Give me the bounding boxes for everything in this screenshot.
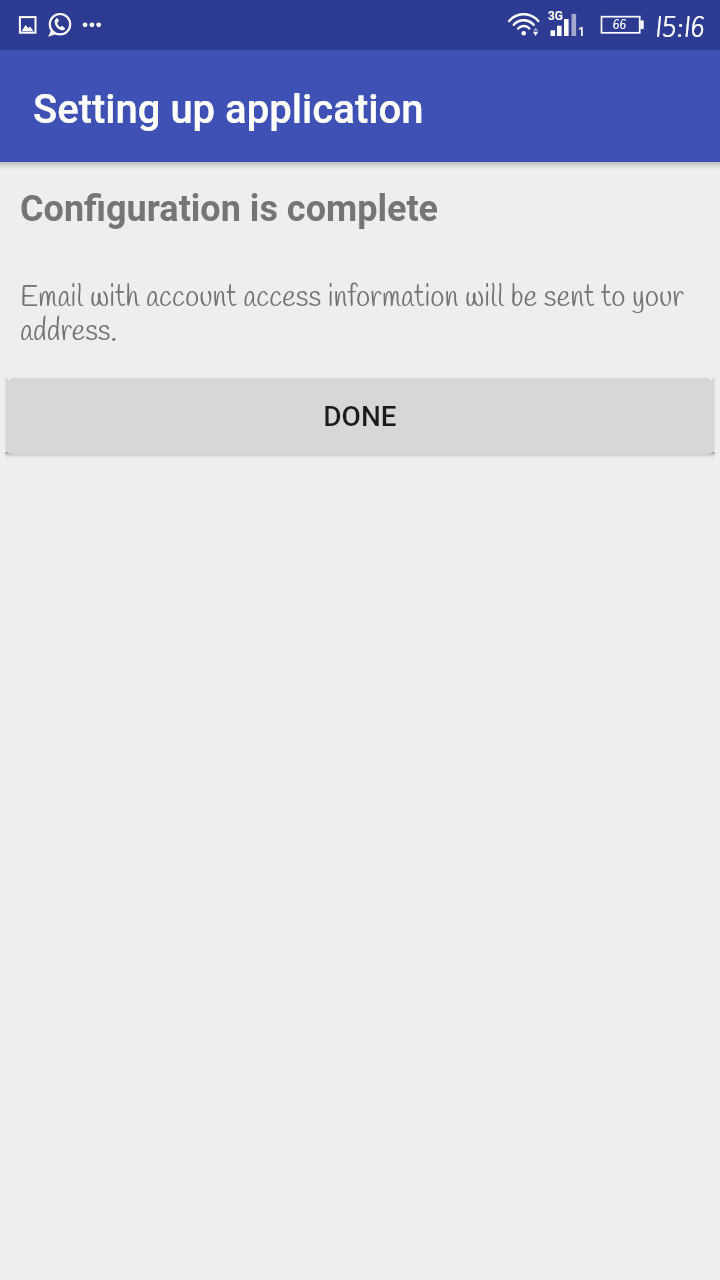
staticText: 15:16: [656, 7, 706, 45]
staticText: 66: [613, 15, 627, 33]
staticText: Configuration is complete: [20, 188, 439, 230]
button[interactable]: DONE: [8, 378, 712, 454]
staticText: DONE: [323, 400, 397, 433]
staticText: Email with account access information wi…: [20, 279, 700, 351]
staticText: 1: [578, 25, 585, 39]
staticText: Setting up application: [33, 86, 424, 133]
staticText: 3G: [548, 9, 563, 23]
